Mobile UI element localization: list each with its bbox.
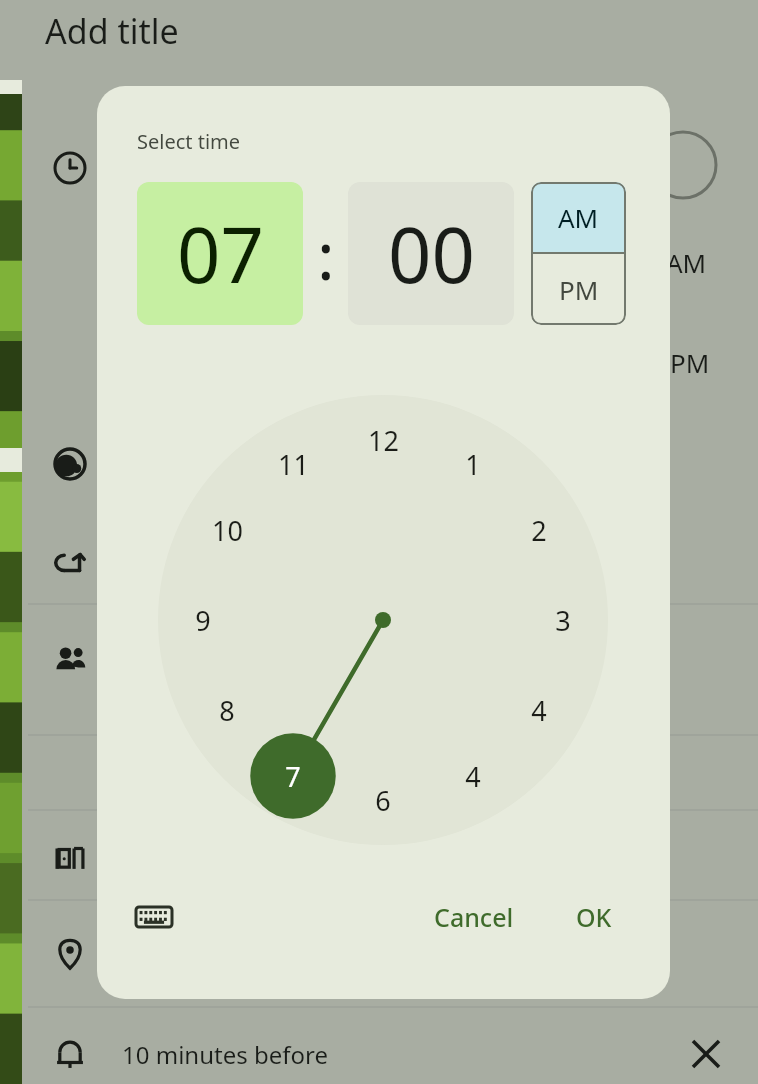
staticText: 2 (531, 512, 547, 549)
button[interactable]: Option (50, 444, 90, 484)
button[interactable]: 10 (201, 508, 253, 552)
button[interactable]: 9 (177, 598, 229, 642)
button[interactable]: 4 (447, 754, 499, 798)
staticText: 00 (388, 202, 475, 306)
staticText: AM (666, 245, 707, 280)
staticText: 10 (212, 512, 243, 549)
button[interactable]: PM (531, 254, 626, 325)
staticText: 9 (195, 602, 211, 639)
button[interactable]: 6 (357, 778, 409, 822)
staticText: Select time (137, 128, 241, 155)
button[interactable]: Option (50, 934, 90, 974)
button[interactable]: OK (549, 889, 639, 945)
button[interactable]: 4 (513, 688, 565, 732)
staticText: 4 (531, 692, 547, 729)
staticText: 4 (465, 758, 481, 795)
button[interactable]: Option (50, 542, 90, 582)
staticText: 1 (465, 446, 481, 483)
staticText: 7 (285, 758, 301, 795)
staticText: 12 (368, 422, 399, 459)
staticText: OK (576, 900, 612, 934)
staticText: 10 minutes before (122, 1038, 328, 1071)
button[interactable]: Option (50, 1035, 90, 1075)
button[interactable]: 12 (357, 418, 409, 462)
staticText: PM (670, 345, 710, 380)
button[interactable]: AM (531, 182, 626, 252)
button[interactable]: 3 (537, 598, 589, 642)
button[interactable]: Cancel (419, 889, 529, 945)
staticText: 07 (177, 202, 264, 306)
button[interactable]: Option (50, 838, 90, 878)
staticText: 8 (219, 692, 235, 729)
staticText: Add title (45, 8, 179, 54)
button[interactable]: Switch to text input (126, 889, 182, 945)
staticText: 11 (278, 446, 309, 483)
button[interactable]: 07 (137, 182, 303, 325)
staticText: PM (559, 272, 599, 307)
button[interactable]: 7 (267, 754, 319, 798)
button[interactable]: 00 (348, 182, 514, 325)
button[interactable]: 2 (513, 508, 565, 552)
staticText: AM (558, 200, 599, 235)
staticText: Cancel (434, 900, 514, 934)
button[interactable]: 8 (201, 688, 253, 732)
button[interactable]: Option (50, 148, 90, 188)
staticText: : (317, 209, 335, 299)
button[interactable]: Remove reminder (684, 1032, 728, 1076)
button[interactable]: 11 (267, 442, 319, 486)
staticText: 3 (555, 602, 571, 639)
staticText: 6 (375, 782, 391, 819)
button[interactable]: 1 (447, 442, 499, 486)
button[interactable]: Option (50, 640, 90, 680)
button[interactable]: 10 minutes before (0, 1025, 758, 1083)
